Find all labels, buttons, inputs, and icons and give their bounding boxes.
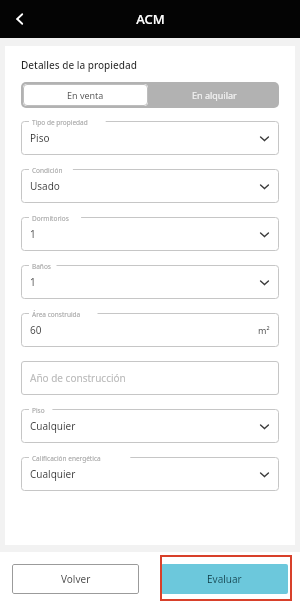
staticText: 60 (30, 323, 42, 337)
button[interactable]: Piso (21, 409, 279, 443)
staticText: m² (258, 324, 270, 336)
button[interactable]: Área construida (21, 313, 279, 347)
button[interactable]: Baños (21, 265, 279, 299)
staticText: 1 (30, 227, 36, 241)
staticText: Año de construcción (30, 371, 126, 385)
staticText: Usado (30, 179, 60, 193)
button[interactable]: Año de construcción (21, 361, 279, 395)
staticText: Detalles de la propiedad (21, 58, 137, 72)
button[interactable]: Calificación energética (21, 457, 279, 491)
staticText: Piso (32, 406, 45, 415)
button[interactable]: Condición (21, 169, 279, 203)
staticText: Calificación energética (32, 454, 101, 463)
button[interactable]: Volver (12, 564, 139, 594)
button[interactable]: Tipo de propiedad (21, 121, 279, 155)
staticText: ACM (136, 10, 165, 28)
staticText: Área construida (32, 310, 81, 319)
staticText: En alquilar (192, 89, 237, 101)
button[interactable]: Dormitorios (21, 217, 279, 251)
staticText: 1 (30, 275, 36, 289)
staticText: Tipo de propiedad (32, 118, 88, 127)
staticText: Condición (32, 166, 63, 175)
staticText: Piso (30, 131, 50, 145)
button[interactable]: Back (4, 3, 36, 35)
staticText: Baños (32, 262, 51, 271)
staticText: Dormitorios (32, 214, 69, 223)
button[interactable]: Evaluar (161, 564, 288, 594)
staticText: Volver (61, 572, 91, 586)
staticText: En venta (67, 89, 104, 101)
staticText: Cualquier (30, 467, 76, 481)
button[interactable]: En alquilar (150, 82, 279, 108)
button[interactable]: En venta (23, 84, 148, 106)
staticText: Evaluar (207, 572, 242, 586)
staticText: Cualquier (30, 419, 76, 433)
